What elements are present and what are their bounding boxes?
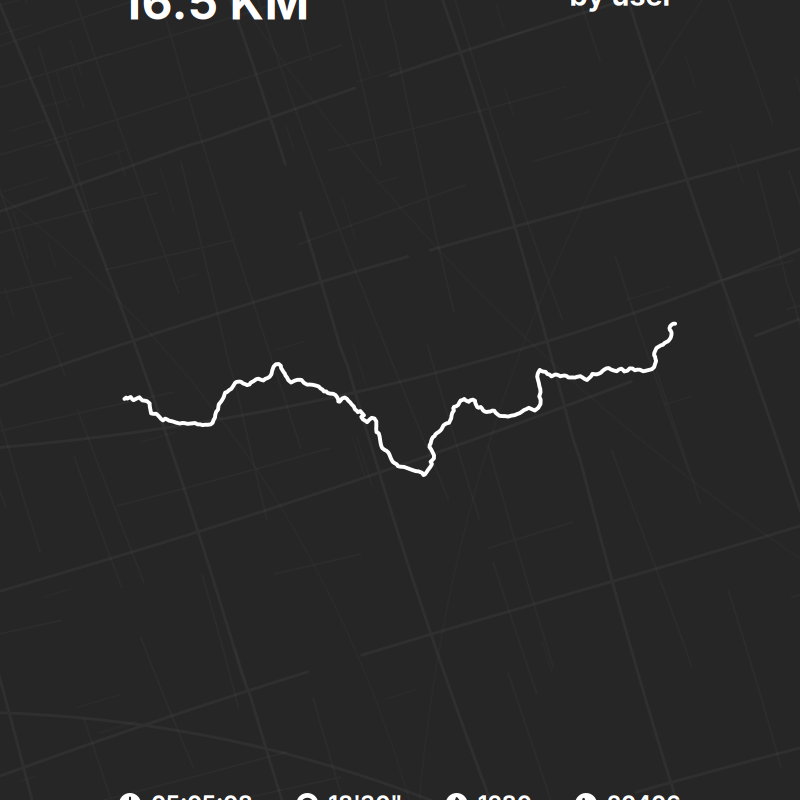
staticText: 20406 — [607, 790, 681, 800]
staticText: by user — [569, 0, 674, 13]
staticText: 16.5 KM — [120, 0, 309, 31]
staticText: 18'30" — [328, 790, 402, 800]
staticText: 1280 — [478, 790, 532, 800]
staticText: 05:05:08 — [151, 790, 253, 800]
